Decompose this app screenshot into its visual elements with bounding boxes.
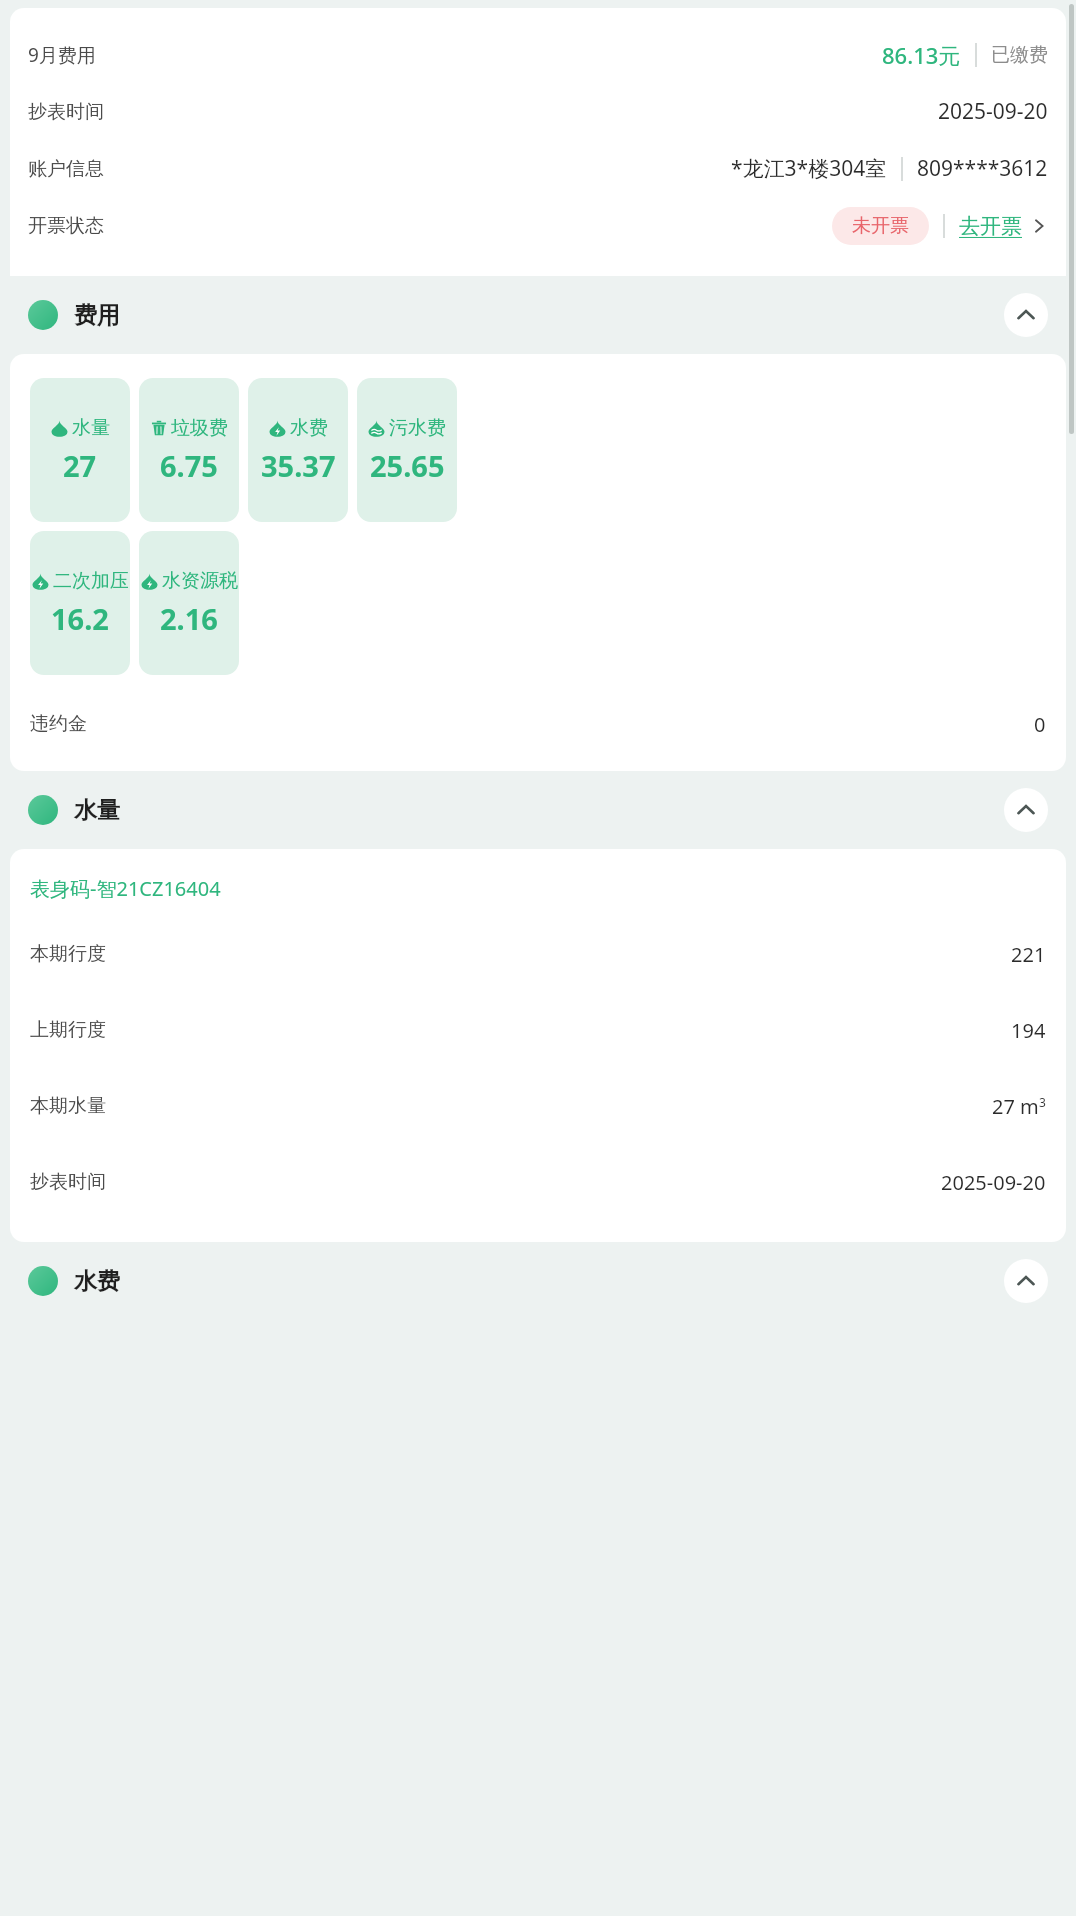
staticText: 35.37 <box>261 446 336 485</box>
button[interactable]: 垃圾费 <box>139 378 239 522</box>
staticText: 本期水量 <box>30 1094 106 1118</box>
staticText: 6.75 <box>160 446 218 485</box>
staticText: 86.13元 <box>882 40 961 70</box>
staticText: 25.65 <box>370 446 445 485</box>
button[interactable]: 水资源税 <box>139 531 239 675</box>
staticText: 水资源税 <box>162 569 238 593</box>
button[interactable]: 二次加压 <box>30 531 130 675</box>
button[interactable]: 未开票 <box>832 207 929 245</box>
staticText: 已缴费 <box>991 43 1048 67</box>
button[interactable]: Collapse section <box>1004 1259 1048 1303</box>
staticText: 2025-09-20 <box>941 1169 1046 1196</box>
staticText: 二次加压 <box>53 569 129 593</box>
staticText: 抄表时间 <box>30 1170 106 1194</box>
staticText: 水费 <box>74 1267 120 1296</box>
staticText: 水费 <box>290 416 328 440</box>
button[interactable]: 去开票 <box>959 213 1048 239</box>
button[interactable]: 水费 <box>248 378 348 522</box>
button[interactable]: 水费 <box>0 1242 1076 1320</box>
staticText: 9月费用 <box>28 42 96 68</box>
button[interactable]: 水量 <box>30 378 130 522</box>
staticText: 本期行度 <box>30 942 106 966</box>
staticText: *龙江3*楼304室 <box>731 154 887 183</box>
staticText: 账户信息 <box>28 157 104 181</box>
staticText: 去开票 <box>959 213 1022 239</box>
staticText: 未开票 <box>852 214 909 238</box>
staticText: 开票状态 <box>28 214 104 238</box>
staticText: 垃圾费 <box>171 416 228 440</box>
button[interactable]: 污水费 <box>357 378 457 522</box>
staticText: 221 <box>1011 941 1046 968</box>
staticText: 2.16 <box>160 599 218 638</box>
staticText: 水量 <box>72 416 110 440</box>
staticText: 0 <box>1034 711 1046 738</box>
staticText: 16.2 <box>51 599 109 638</box>
staticText: 194 <box>1011 1017 1046 1044</box>
button[interactable]: Collapse section <box>1004 788 1048 832</box>
staticText: 3 <box>1039 1094 1046 1110</box>
staticText: 污水费 <box>389 416 446 440</box>
staticText: 809****3612 <box>917 154 1048 183</box>
staticText: 表身码-智21CZ16404 <box>30 875 221 902</box>
staticText: 费用 <box>74 301 120 330</box>
staticText: 水量 <box>74 796 120 825</box>
staticText: 27 m <box>992 1093 1039 1120</box>
staticText: 上期行度 <box>30 1018 106 1042</box>
staticText: 违约金 <box>30 712 87 736</box>
staticText: 2025-09-20 <box>938 97 1048 126</box>
button[interactable]: Collapse section <box>1004 293 1048 337</box>
button[interactable]: 费用 <box>0 276 1076 354</box>
staticText: 抄表时间 <box>28 100 104 124</box>
button[interactable]: 水量 <box>0 771 1076 849</box>
staticText: 27 <box>63 446 97 485</box>
